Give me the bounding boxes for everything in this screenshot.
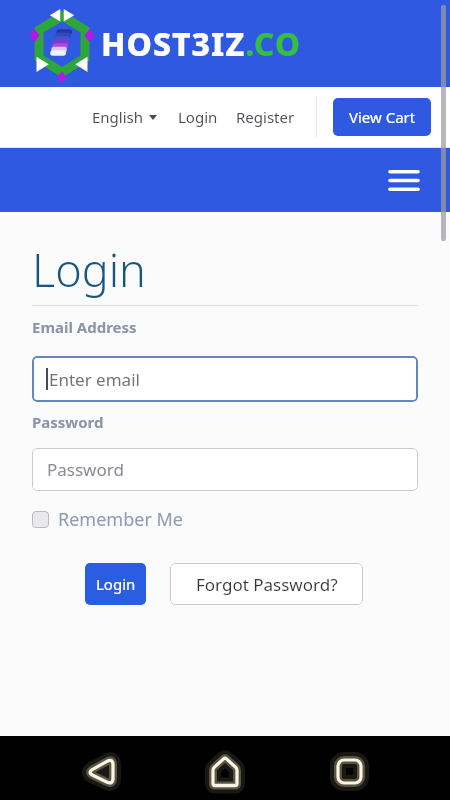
button[interactable]: Forgot Password? xyxy=(170,563,363,605)
staticText: Email Address xyxy=(32,317,137,337)
staticText: English xyxy=(92,107,144,127)
staticText: Password xyxy=(32,412,104,432)
staticText: Forgot Password? xyxy=(196,573,338,596)
button[interactable]: Enter email xyxy=(32,356,418,402)
staticText: HOST3IZ.CO xyxy=(101,22,302,66)
button[interactable]: View Cart xyxy=(333,98,431,136)
staticText: Password xyxy=(47,458,124,481)
button[interactable]: Login xyxy=(178,107,218,127)
staticText: Login xyxy=(32,239,146,300)
button[interactable]: HOST3IZ.CO xyxy=(0,0,450,87)
button[interactable] xyxy=(201,747,249,795)
button[interactable]: Password xyxy=(32,448,418,491)
staticText: Enter email xyxy=(49,368,140,391)
staticText: Remember Me xyxy=(58,507,183,532)
staticText: Login xyxy=(96,574,136,594)
button[interactable] xyxy=(390,170,418,191)
staticText: View Cart xyxy=(349,107,416,127)
button[interactable]: English xyxy=(92,107,157,127)
button[interactable]: Register xyxy=(236,107,295,127)
button[interactable] xyxy=(325,747,373,795)
button[interactable]: Login xyxy=(85,563,146,605)
button[interactable] xyxy=(76,747,124,795)
button[interactable]: Remember Me xyxy=(32,507,183,532)
